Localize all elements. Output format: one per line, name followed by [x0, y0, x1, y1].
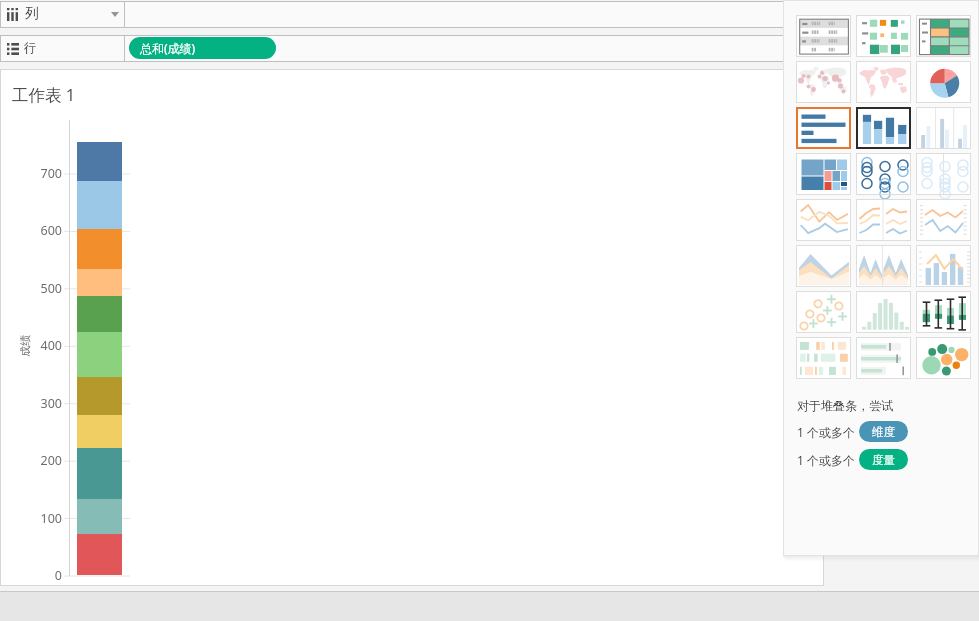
button[interactable]: Chart type 11: [916, 153, 971, 195]
button[interactable]: Chart type 6: [796, 107, 851, 149]
staticText: 总和(成绩): [140, 40, 196, 56]
button[interactable]: Chart type 7: [856, 107, 911, 149]
button[interactable]: Chart type 3: [796, 61, 851, 103]
button[interactable]: Chart type 17: [916, 245, 971, 287]
staticText: 0: [18, 567, 62, 584]
button[interactable]: 总和(成绩): [129, 37, 276, 59]
staticText: 列: [25, 5, 39, 22]
staticText: 维度: [872, 425, 895, 439]
staticText: 200: [18, 452, 62, 469]
button[interactable]: Chart type 1: [856, 15, 911, 57]
button[interactable]: 度量: [859, 449, 908, 470]
button[interactable]: Chart type 15: [796, 245, 851, 287]
button[interactable]: Chart type 23: [916, 337, 971, 379]
button[interactable]: 维度: [859, 421, 908, 442]
staticText: 100: [18, 510, 62, 527]
staticText: 300: [18, 395, 62, 412]
staticText: 度量: [872, 453, 895, 467]
staticText: 400: [18, 337, 62, 354]
button[interactable]: Chart type 14: [916, 199, 971, 241]
button[interactable]: Chart type 16: [856, 245, 911, 287]
button[interactable]: 列: [0, 1, 125, 28]
button[interactable]: Chart type 13: [856, 199, 911, 241]
button[interactable]: Chart type 9: [796, 153, 851, 195]
button[interactable]: Chart type 2: [916, 15, 971, 57]
staticText: 600: [18, 222, 62, 239]
button[interactable]: Chart type 12: [796, 199, 851, 241]
staticText: 1 个或多个: [797, 424, 855, 440]
button[interactable]: Chart type 0: [796, 15, 851, 57]
button[interactable]: Chart type 19: [856, 291, 911, 333]
staticText: 500: [18, 280, 62, 297]
staticText: 成绩: [18, 335, 32, 357]
button[interactable]: Chart type 5: [916, 61, 971, 103]
staticText: 工作表 1: [12, 83, 76, 106]
button[interactable]: Chart type 21: [796, 337, 851, 379]
button[interactable]: Chart type 8: [916, 107, 971, 149]
button[interactable]: Chart type 4: [856, 61, 911, 103]
button[interactable]: 行: [0, 35, 125, 62]
button[interactable]: Chart type 20: [916, 291, 971, 333]
staticText: 700: [18, 165, 62, 182]
button[interactable]: Chart type 18: [796, 291, 851, 333]
staticText: 对于堆叠条，尝试: [797, 398, 893, 413]
button[interactable]: Chart type 10: [856, 153, 911, 195]
staticText: 1 个或多个: [797, 452, 855, 468]
button[interactable]: Chart type 22: [856, 337, 911, 379]
staticText: 行: [24, 40, 37, 56]
